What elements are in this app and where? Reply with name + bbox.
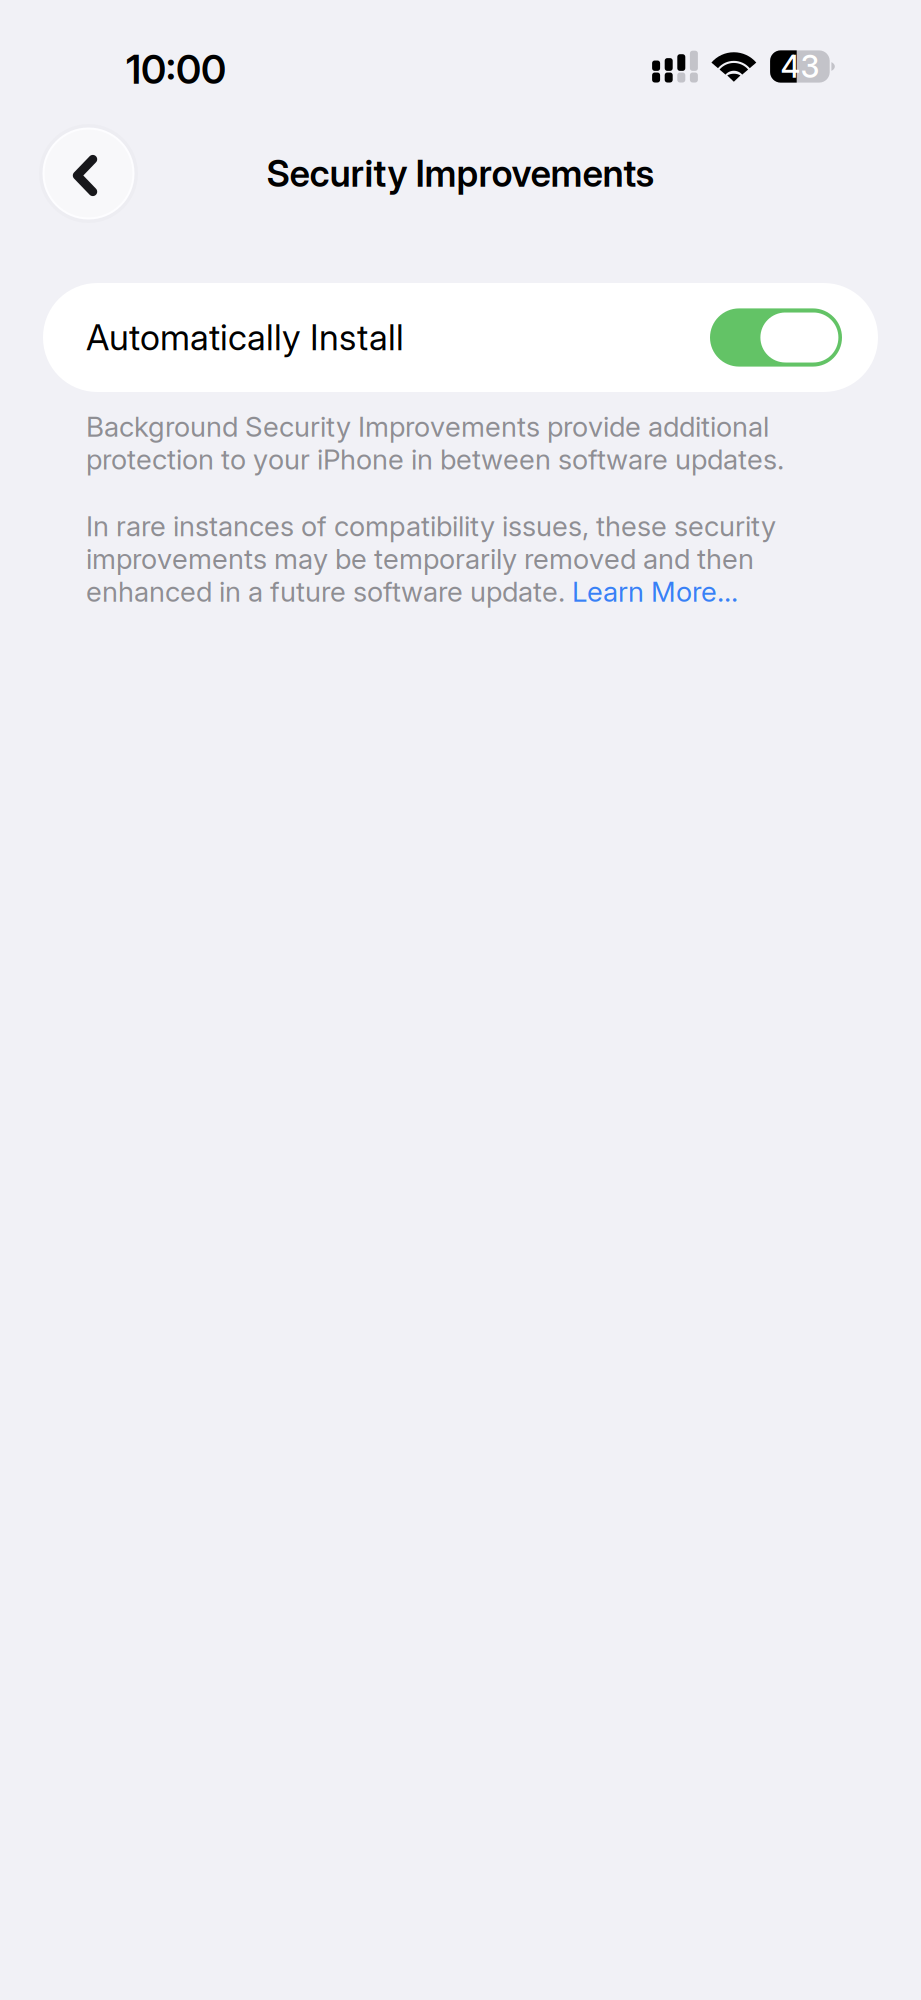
- staticText: In rare instances of compatibility issue…: [86, 509, 776, 608]
- staticText: 43: [780, 48, 819, 85]
- staticText: Automatically Install: [86, 316, 404, 359]
- staticText: Background Security Improvements provide…: [86, 410, 784, 476]
- button[interactable]: Automatically Install: [43, 283, 878, 392]
- button[interactable]: Back: [39, 124, 138, 223]
- staticText: 10:00: [126, 46, 226, 93]
- staticText: Security Improvements: [266, 151, 654, 195]
